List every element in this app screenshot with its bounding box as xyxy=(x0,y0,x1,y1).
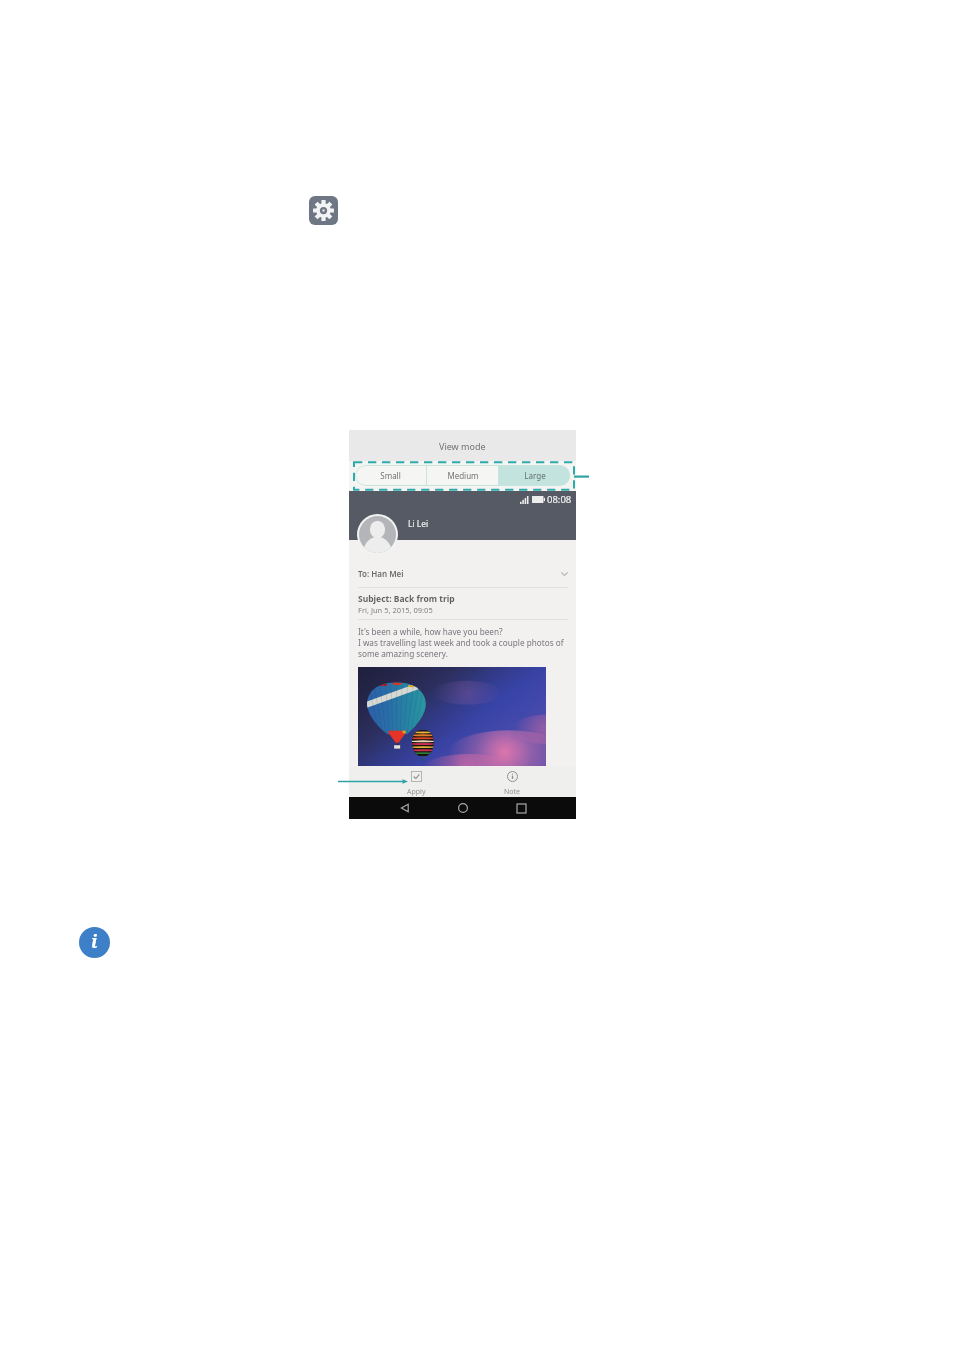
staticText: Subject: Back from trip xyxy=(358,593,455,605)
staticText: some amazing scenery. xyxy=(358,648,448,659)
staticText: To: Han Mei xyxy=(358,568,404,579)
staticText: Note xyxy=(504,787,521,797)
button[interactable]: Back xyxy=(375,797,434,819)
staticText: 08:08 xyxy=(547,493,572,506)
button[interactable]: To: Han Mei xyxy=(349,568,576,579)
button[interactable]: Home xyxy=(434,797,492,819)
staticText: Small xyxy=(380,470,401,481)
staticText: View mode xyxy=(439,440,486,452)
staticText: i xyxy=(91,929,98,954)
staticText: Apply xyxy=(407,787,426,797)
staticText: Large xyxy=(524,470,546,481)
button[interactable]: Medium xyxy=(427,465,498,486)
button[interactable]: Recents xyxy=(492,797,550,819)
button[interactable]: Apply xyxy=(368,766,464,797)
staticText: It's been a while, how have you been? xyxy=(358,626,503,637)
button[interactable]: Note xyxy=(464,766,561,797)
staticText: I was travelling last week and took a co… xyxy=(358,637,564,648)
button[interactable]: Information xyxy=(79,927,110,958)
button[interactable]: Small xyxy=(355,465,426,486)
staticText: Medium xyxy=(447,470,479,481)
button[interactable]: Large xyxy=(499,465,570,486)
staticText: Fri, Jun 5, 2015, 09:05 xyxy=(358,605,433,615)
button[interactable]: Settings xyxy=(309,196,338,225)
staticText: Li Lei xyxy=(408,518,429,530)
